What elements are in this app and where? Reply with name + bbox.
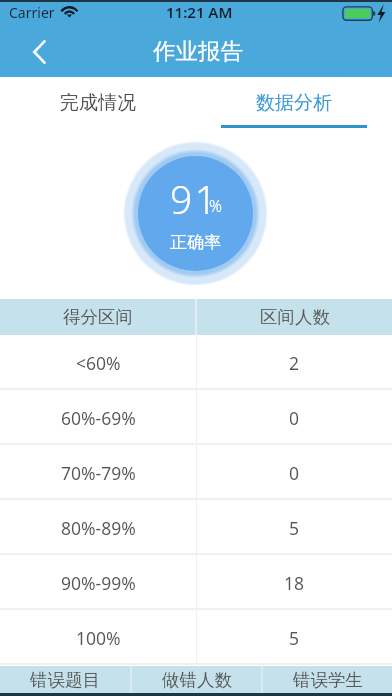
staticText: 2 xyxy=(289,351,300,375)
staticText: 完成情况 xyxy=(60,91,136,115)
staticText: 100% xyxy=(76,626,121,650)
staticText: 做错人数 xyxy=(162,669,232,691)
button[interactable]: 错误题目 xyxy=(0,666,130,693)
staticText: 区间人数 xyxy=(260,306,330,328)
staticText: <60% xyxy=(76,351,121,375)
staticText: 得分区间 xyxy=(63,306,133,328)
staticText: 正确率 xyxy=(170,232,221,253)
staticText: 5 xyxy=(289,516,300,540)
button[interactable]: 完成情况 xyxy=(0,77,196,130)
staticText: 错误学生 xyxy=(293,669,363,691)
staticText: 90%-99% xyxy=(61,571,136,595)
staticText: 数据分析 xyxy=(256,91,332,115)
button[interactable]: 数据分析 xyxy=(196,77,392,130)
staticText: 60%-69% xyxy=(61,406,136,430)
staticText: 80%-89% xyxy=(61,516,136,540)
staticText: Carrier xyxy=(9,3,55,22)
staticText: 0 xyxy=(289,406,300,430)
staticText: 91 xyxy=(170,172,219,225)
button[interactable]: 错误学生 xyxy=(263,666,392,693)
staticText: 70%-79% xyxy=(61,461,136,485)
staticText: 作业报告 xyxy=(153,37,243,65)
staticText: 5 xyxy=(289,626,300,650)
staticText: 0 xyxy=(289,461,300,485)
staticText: % xyxy=(209,195,222,217)
staticText: 错误题目 xyxy=(30,669,100,691)
staticText: 18 xyxy=(284,571,305,595)
staticText: 11:21 AM xyxy=(166,2,233,22)
button[interactable]: Back xyxy=(17,29,63,75)
button[interactable]: 做错人数 xyxy=(132,666,261,693)
